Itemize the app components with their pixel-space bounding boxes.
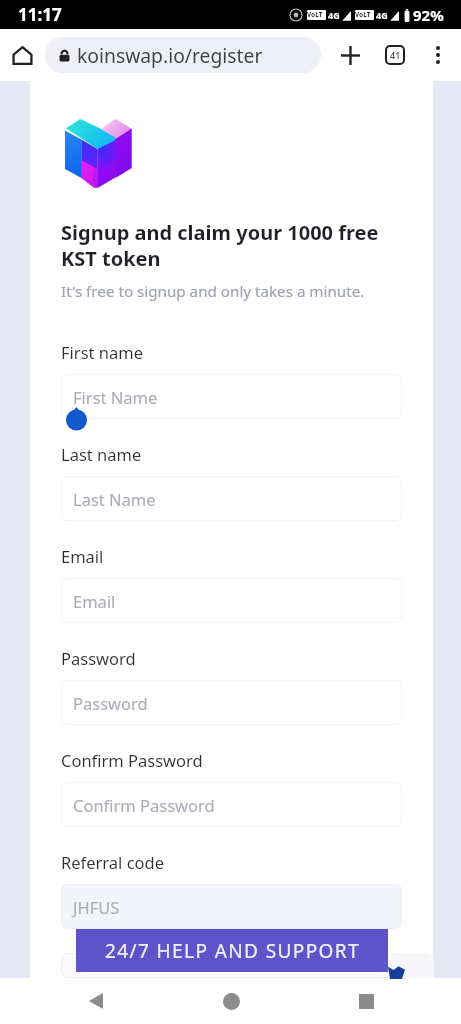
- button[interactable]: New tab: [331, 29, 369, 81]
- staticText: 4G: [328, 9, 340, 21]
- button[interactable]: Back: [62, 978, 130, 1024]
- button[interactable]: More options: [421, 29, 454, 81]
- staticText: First name: [61, 341, 143, 363]
- staticText: Password: [61, 647, 136, 669]
- button[interactable]: Chat support: [389, 953, 434, 979]
- staticText: Email: [73, 590, 116, 612]
- staticText: 92%: [413, 5, 444, 25]
- staticText: Last Name: [73, 488, 156, 510]
- staticText: First Name: [73, 386, 158, 408]
- staticText: Password: [73, 692, 148, 714]
- button[interactable]: Recents: [332, 978, 400, 1024]
- button[interactable]: Password: [61, 680, 402, 725]
- staticText: Confirm Password: [73, 794, 215, 816]
- staticText: VoLTE: [307, 10, 326, 20]
- button[interactable]: Email: [61, 578, 402, 623]
- button[interactable]: koinswap.io/register: [45, 37, 321, 73]
- staticText: 41: [390, 49, 401, 61]
- staticText: Confirm Password: [61, 749, 203, 771]
- staticText: VoLTE: [355, 10, 374, 20]
- button[interactable]: Tabs: [369, 29, 421, 81]
- button[interactable]: JHFUS: [61, 884, 402, 929]
- button[interactable]: Home: [197, 978, 265, 1024]
- button[interactable]: [61, 953, 402, 978]
- staticText: koinswap.io/register: [77, 42, 263, 68]
- staticText: Referral code: [61, 851, 165, 873]
- button[interactable]: Home: [0, 29, 45, 81]
- staticText: Email: [61, 545, 104, 567]
- button[interactable]: Last Name: [61, 476, 402, 521]
- staticText: It's free to signup and only takes a min…: [61, 281, 365, 302]
- staticText: Last name: [61, 443, 142, 465]
- staticText: JHFUS: [73, 896, 120, 918]
- button[interactable]: First Name: [61, 374, 402, 419]
- staticText: 11:17: [18, 3, 62, 26]
- staticText: 4G: [376, 9, 388, 21]
- button[interactable]: Confirm Password: [61, 782, 402, 827]
- staticText: 24/7 HELP AND SUPPORT: [105, 938, 360, 964]
- staticText: Signup and claim your 1000 free KST toke…: [61, 219, 379, 272]
- button[interactable]: 24/7 HELP AND SUPPORT: [76, 929, 388, 972]
